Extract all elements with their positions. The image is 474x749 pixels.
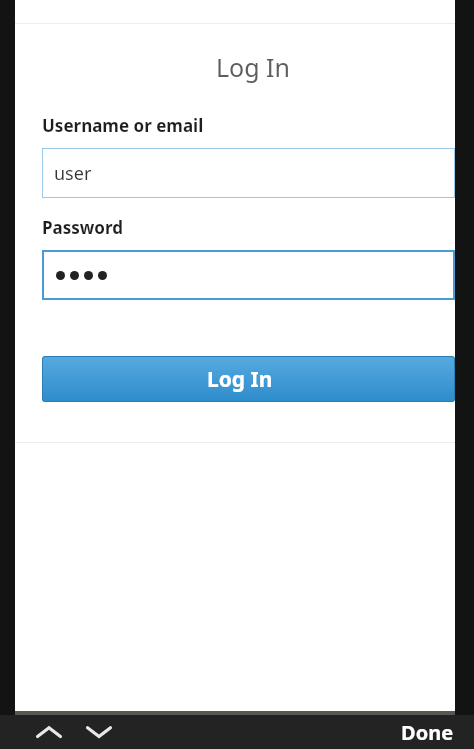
button[interactable]: Previous field bbox=[26, 715, 72, 749]
button[interactable] bbox=[42, 250, 455, 300]
staticText: Done bbox=[401, 719, 454, 746]
button[interactable]: Forward bbox=[95, 711, 175, 749]
staticText: Log In bbox=[216, 50, 291, 84]
button[interactable]: Log In bbox=[42, 356, 455, 402]
staticText: Username or email bbox=[42, 114, 204, 137]
button[interactable]: Share bbox=[387, 711, 447, 749]
button[interactable]: Back bbox=[15, 711, 95, 749]
button[interactable]: Done bbox=[401, 715, 454, 749]
staticText: user bbox=[54, 161, 92, 186]
staticText: Password bbox=[42, 216, 123, 239]
staticText: Log In bbox=[207, 365, 273, 394]
button[interactable]: Next field bbox=[76, 715, 122, 749]
button[interactable]: user bbox=[42, 148, 455, 198]
